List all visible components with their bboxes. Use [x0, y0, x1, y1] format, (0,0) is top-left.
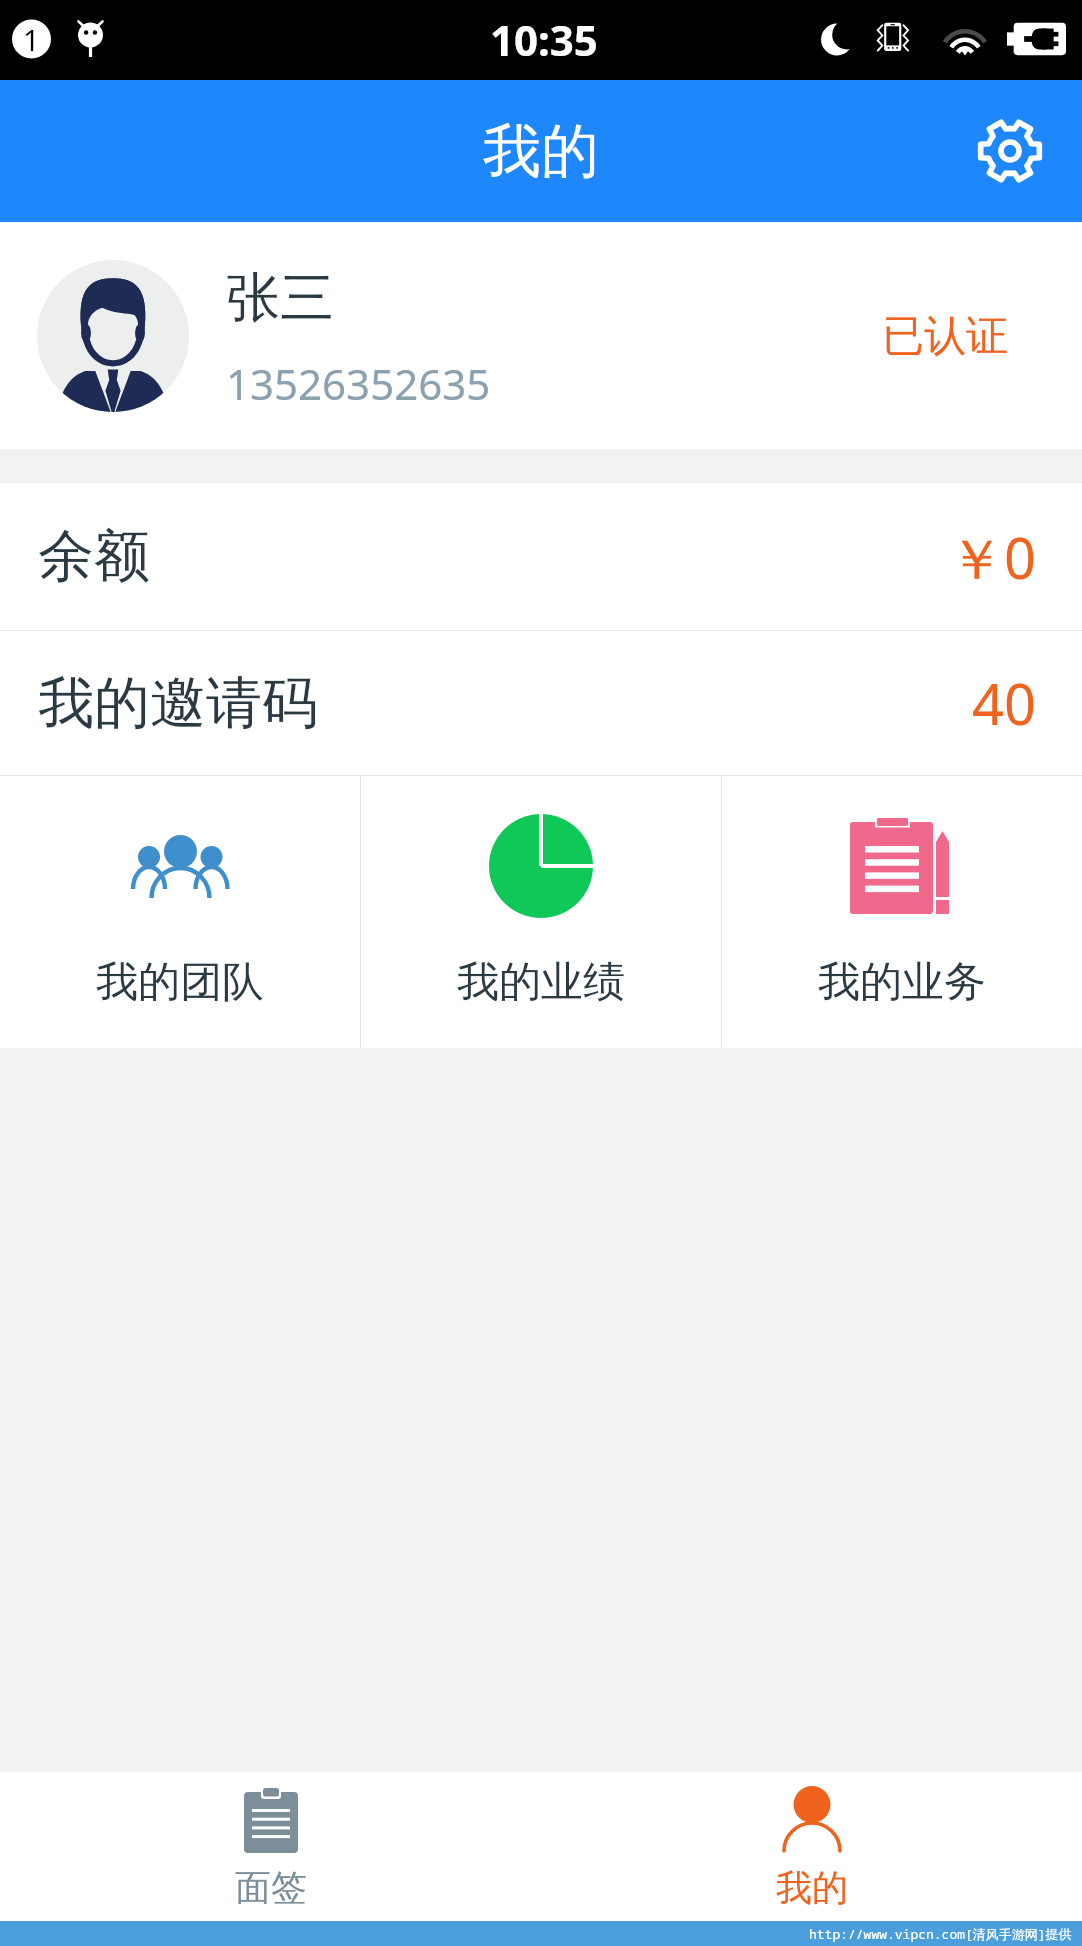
- staticText: 13526352635: [226, 355, 491, 412]
- staticText: 我的业务: [818, 956, 986, 1009]
- button[interactable]: Settings: [966, 107, 1054, 195]
- staticText: ￥0: [948, 519, 1037, 595]
- staticText: 10:35: [490, 11, 598, 68]
- staticText: 40: [972, 665, 1037, 741]
- staticText: 我的邀请码: [38, 668, 318, 739]
- button[interactable]: 余额: [0, 483, 1082, 630]
- staticText: 余额: [38, 521, 150, 592]
- button[interactable]: 我的邀请码: [0, 631, 1082, 775]
- button[interactable]: 面签: [0, 1772, 541, 1921]
- button[interactable]: 张三: [0, 222, 1082, 449]
- button[interactable]: 我的业绩: [361, 776, 721, 1048]
- staticText: 已认证: [882, 310, 1008, 363]
- button[interactable]: 我的团队: [0, 776, 360, 1048]
- staticText: 1: [23, 20, 40, 59]
- staticText: 我的: [483, 115, 599, 188]
- button[interactable]: 我的: [541, 1772, 1082, 1921]
- staticText: http://www.vipcn.com[清风手游网]提供: [809, 1925, 1072, 1943]
- staticText: 我的业绩: [457, 956, 625, 1009]
- staticText: 我的: [776, 1865, 848, 1910]
- button[interactable]: 我的业务: [722, 776, 1082, 1048]
- staticText: 我的团队: [96, 956, 264, 1009]
- staticText: 张三: [226, 264, 334, 332]
- staticText: 面签: [235, 1865, 307, 1910]
